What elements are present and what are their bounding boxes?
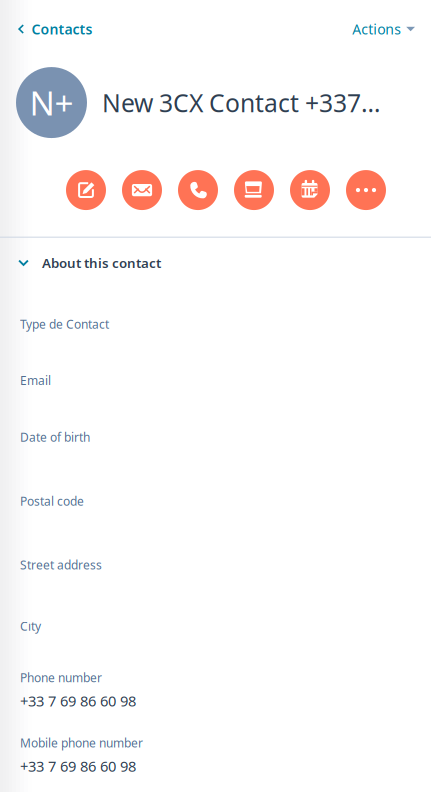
staticText: New 3CX Contact +337… [102,86,381,119]
staticText: +33 7 69 86 60 98 [20,756,136,776]
staticText: Date of birth [20,429,90,445]
button[interactable]: Log a note [234,170,274,210]
button[interactable]: Call [178,170,218,210]
staticText: Phone number [20,669,102,686]
button[interactable]: Schedule meeting [290,170,330,210]
staticText: N+ [29,80,73,125]
staticText: City [20,618,41,634]
staticText: Contacts [31,19,92,39]
button[interactable]: Actions [352,19,431,39]
button[interactable]: Edit contact [66,170,106,210]
staticText: Mobile phone number [20,735,143,751]
staticText: Postal code [20,493,84,509]
staticText: Street address [20,557,102,573]
staticText: +33 7 69 86 60 98 [20,691,136,711]
staticText: Type de Contact [20,316,109,332]
button[interactable]: Send email [122,170,162,210]
staticText: Actions [352,19,401,39]
staticText: About this contact [42,254,161,272]
button[interactable]: More actions [346,170,386,210]
button[interactable]: Contacts [0,19,92,39]
staticText: Email [20,372,51,388]
button[interactable]: About this contact [0,254,431,272]
